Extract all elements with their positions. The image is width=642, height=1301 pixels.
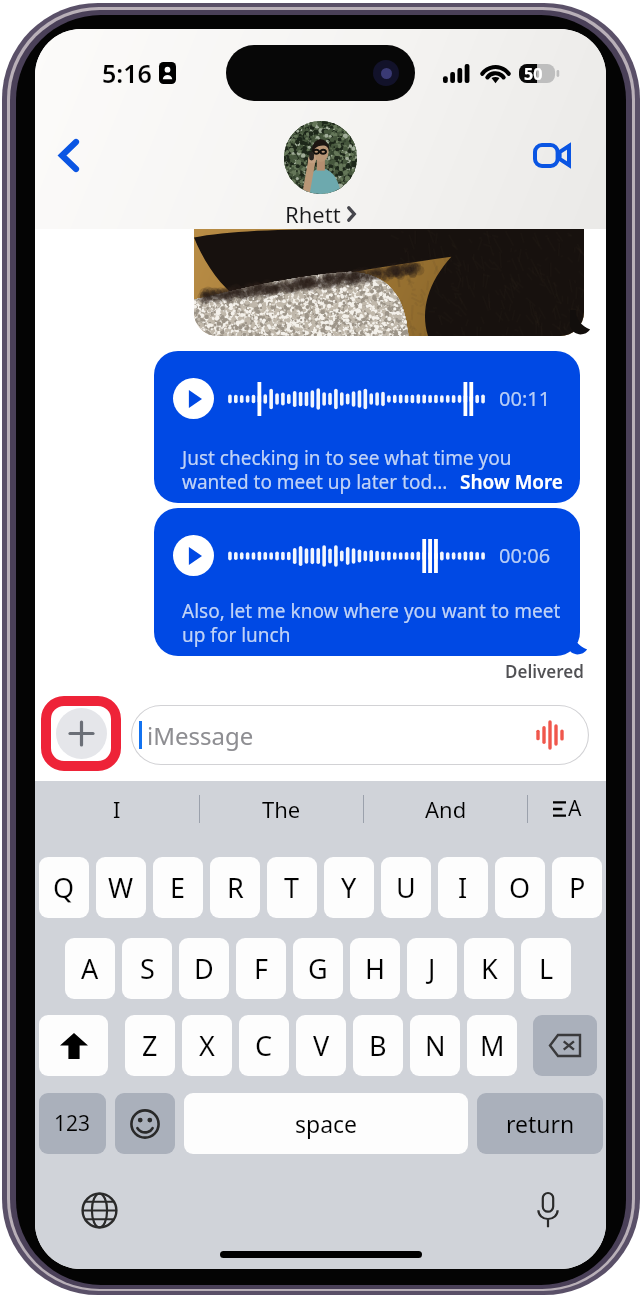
- button[interactable]: M: [467, 1015, 517, 1076]
- staticText: N: [425, 1027, 446, 1064]
- button[interactable]: Play audio: [154, 508, 580, 656]
- button[interactable]: 123: [39, 1093, 106, 1154]
- button[interactable]: Z: [125, 1015, 175, 1076]
- button[interactable]: L: [521, 938, 571, 999]
- staticText: W: [108, 869, 134, 906]
- button[interactable]: F: [236, 938, 286, 999]
- staticText: The: [262, 794, 301, 824]
- staticText: iMessage: [147, 719, 254, 752]
- button[interactable]: W: [96, 857, 146, 918]
- staticText: M: [480, 1027, 505, 1064]
- button[interactable]: space: [184, 1093, 468, 1154]
- button[interactable]: Contact photo: [284, 121, 357, 194]
- staticText: return: [506, 1108, 575, 1139]
- staticText: 123: [54, 1109, 91, 1138]
- staticText: L: [539, 950, 554, 987]
- staticText: 00:11: [499, 385, 551, 412]
- button[interactable]: K: [464, 938, 514, 999]
- staticText: R: [227, 869, 244, 906]
- staticText: J: [428, 950, 436, 987]
- staticText: E: [170, 869, 186, 906]
- button[interactable]: Shift: [39, 1015, 108, 1076]
- staticText: Y: [341, 869, 357, 906]
- button[interactable]: I: [438, 857, 488, 918]
- button[interactable]: O: [495, 857, 545, 918]
- button[interactable]: Play audio: [173, 535, 214, 576]
- staticText: 50: [524, 63, 543, 82]
- button[interactable]: Y: [324, 857, 374, 918]
- staticText: 5:16: [102, 56, 152, 90]
- staticText: up for lunch: [182, 622, 291, 648]
- button[interactable]: J: [407, 938, 457, 999]
- button[interactable]: Photo: [194, 229, 584, 336]
- button[interactable]: FaceTime video: [525, 135, 579, 175]
- staticText: And: [425, 794, 467, 824]
- staticText: wanted to meet up later tod...: [182, 469, 448, 495]
- staticText: V: [313, 1027, 330, 1064]
- staticText: Z: [142, 1027, 158, 1064]
- button[interactable]: E: [153, 857, 203, 918]
- button[interactable]: Text formatting: [528, 781, 606, 836]
- other: Audio message: [535, 722, 565, 748]
- button[interactable]: P: [552, 857, 602, 918]
- staticText: H: [365, 950, 386, 987]
- staticText: Delivered: [505, 660, 584, 683]
- button[interactable]: Backspace: [533, 1015, 597, 1076]
- button[interactable]: U: [381, 857, 431, 918]
- button[interactable]: G: [293, 938, 343, 999]
- button[interactable]: Q: [39, 857, 89, 918]
- button[interactable]: Add attachment: [56, 708, 107, 759]
- staticText: X: [199, 1027, 215, 1064]
- button[interactable]: B: [353, 1015, 403, 1076]
- button[interactable]: return: [477, 1093, 603, 1154]
- staticText: O: [509, 869, 531, 906]
- button[interactable]: D: [179, 938, 229, 999]
- staticText: F: [254, 950, 269, 987]
- button[interactable]: Change keyboard: [75, 1186, 123, 1234]
- button[interactable]: R: [210, 857, 260, 918]
- button[interactable]: C: [239, 1015, 289, 1076]
- button[interactable]: A: [65, 938, 115, 999]
- button[interactable]: Play audio: [173, 378, 214, 419]
- button[interactable]: X: [182, 1015, 232, 1076]
- staticText: space: [295, 1108, 358, 1139]
- staticText: G: [308, 950, 328, 987]
- button[interactable]: Emoji: [115, 1093, 175, 1154]
- button[interactable]: S: [122, 938, 172, 999]
- button[interactable]: Dictate: [524, 1186, 572, 1234]
- staticText: Just checking in to see what time you: [182, 445, 512, 471]
- button[interactable]: N: [410, 1015, 460, 1076]
- button[interactable]: H: [350, 938, 400, 999]
- button[interactable]: The: [200, 781, 363, 836]
- staticText: I: [113, 794, 121, 824]
- staticText: C: [255, 1027, 273, 1064]
- button[interactable]: T: [267, 857, 317, 918]
- staticText: Rhett: [285, 199, 341, 229]
- staticText: S: [140, 950, 155, 987]
- staticText: Also, let me know where you want to meet: [182, 598, 561, 624]
- staticText: Q: [53, 869, 75, 906]
- button[interactable]: I: [35, 781, 199, 836]
- staticText: T: [284, 869, 300, 906]
- staticText: I: [458, 869, 468, 906]
- staticText: 00:06: [499, 542, 551, 569]
- staticText: D: [194, 950, 214, 987]
- button[interactable]: V: [296, 1015, 346, 1076]
- staticText: B: [369, 1027, 387, 1064]
- staticText: P: [569, 869, 586, 906]
- staticText: A: [568, 794, 582, 823]
- button[interactable]: Play audio: [154, 351, 580, 503]
- button[interactable]: Show More: [460, 469, 563, 495]
- button[interactable]: Back: [39, 125, 99, 185]
- button[interactable]: iMessage text field: [131, 705, 589, 765]
- staticText: K: [481, 950, 498, 987]
- staticText: A: [81, 950, 99, 987]
- staticText: U: [396, 869, 416, 906]
- button[interactable]: And: [364, 781, 527, 836]
